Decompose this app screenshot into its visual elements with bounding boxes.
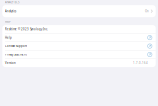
staticText: ANALYTICS — [5, 0, 19, 4]
staticText: HELP — [5, 20, 11, 24]
button[interactable]: Contact support — [2, 42, 156, 50]
staticText: Realtime © 2023 Synology Inc. — [5, 27, 48, 31]
staticText: Help — [5, 36, 12, 39]
staticText: Analytics — [5, 9, 16, 13]
staticText: Version — [5, 61, 16, 65]
button[interactable]: Help — [2, 33, 156, 42]
staticText: Contact support — [5, 44, 27, 48]
staticText: 1.7.0-164 — [133, 61, 148, 65]
staticText: Privacy Statement — [5, 53, 27, 56]
button[interactable]: Analytics — [2, 5, 156, 17]
button[interactable]: Privacy Statement — [2, 50, 156, 59]
staticText: On — [145, 9, 149, 13]
button[interactable]: Version — [2, 59, 156, 67]
button[interactable]: Realtime © 2023 Synology Inc. — [2, 25, 156, 33]
